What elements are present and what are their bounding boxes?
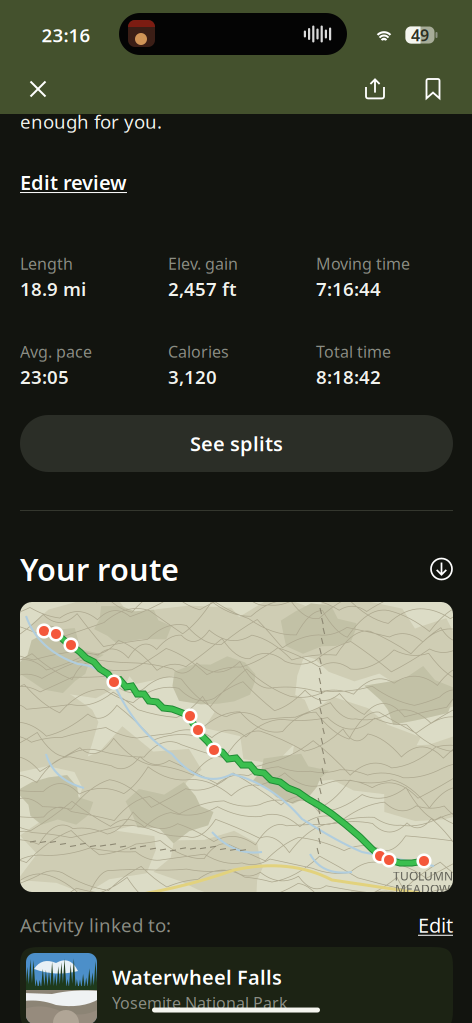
staticText: Calories bbox=[168, 341, 229, 362]
staticText: Total time bbox=[316, 341, 391, 362]
staticText: 23:16 bbox=[41, 23, 90, 47]
staticText: 8:18:42 bbox=[316, 364, 381, 389]
staticText: 2,457 ft bbox=[168, 276, 237, 301]
staticText: See splits bbox=[190, 430, 283, 457]
staticText: TUOLUMNE bbox=[393, 868, 460, 884]
staticText: 3,120 bbox=[168, 364, 217, 389]
staticText: Moving time bbox=[316, 253, 410, 274]
staticText: enough for you. bbox=[20, 109, 162, 134]
button[interactable]: See splits bbox=[20, 415, 453, 472]
button[interactable]: Download route bbox=[430, 557, 453, 580]
button[interactable]: Bookmark bbox=[409, 66, 457, 112]
staticText: Edit review bbox=[20, 169, 127, 196]
staticText: Your route bbox=[20, 549, 179, 589]
staticText: Edit bbox=[418, 912, 453, 938]
staticText: MEADOWS bbox=[395, 881, 457, 897]
staticText: 18.9 mi bbox=[20, 276, 86, 301]
button[interactable]: Close bbox=[10, 66, 66, 112]
button[interactable]: Edit review bbox=[20, 169, 127, 196]
button[interactable]: Waterwheel Falls bbox=[20, 947, 453, 1023]
staticText: Waterwheel Falls bbox=[112, 964, 282, 990]
staticText: Length bbox=[20, 253, 73, 274]
button[interactable]: Share bbox=[351, 66, 399, 112]
staticText: Yosemite National Park bbox=[112, 992, 288, 1013]
staticText: Activity linked to: bbox=[20, 913, 171, 937]
staticText: 23:05 bbox=[20, 364, 69, 389]
staticText: Elev. gain bbox=[168, 253, 238, 274]
button[interactable]: Edit bbox=[418, 912, 453, 938]
staticText: Avg. pace bbox=[20, 341, 92, 362]
staticText: 7:16:44 bbox=[316, 276, 381, 301]
staticText: 49 bbox=[411, 24, 429, 46]
